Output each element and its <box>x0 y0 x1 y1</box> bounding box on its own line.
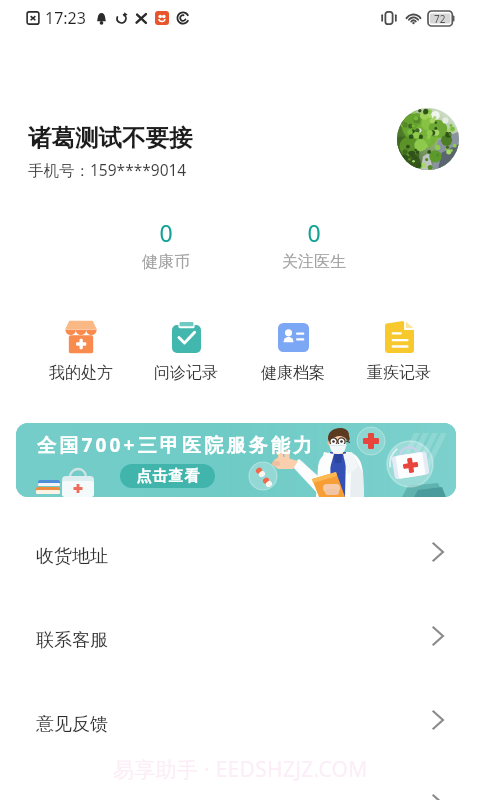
button[interactable]: 健康档案 <box>240 315 346 391</box>
staticText: 健康档案 <box>261 363 325 383</box>
staticText: 全国700+三甲医院服务能力 <box>37 432 316 458</box>
staticText: 72 <box>434 12 446 26</box>
staticText: 意见反馈 <box>36 713 108 736</box>
staticText: 我的处方 <box>49 363 113 383</box>
staticText: 健康币 <box>142 252 190 272</box>
staticText: 诸葛测试不要接 <box>28 123 193 153</box>
button[interactable]: 重疾记录 <box>346 315 452 391</box>
staticText: 收货地址 <box>36 545 108 568</box>
staticText: 关注医生 <box>282 252 346 272</box>
button[interactable]: 收货地址 <box>0 513 480 597</box>
button[interactable]: 全国700+三甲医院服务能力 点击查看 <box>16 423 456 497</box>
staticText: 问诊记录 <box>154 363 218 383</box>
staticText: 0 <box>307 217 321 248</box>
button[interactable]: 意见反馈 <box>0 681 480 765</box>
staticText: 手机号：159****9014 <box>28 159 187 180</box>
staticText: 0 <box>159 217 173 248</box>
button[interactable]: 问诊记录 <box>133 315 239 391</box>
button[interactable] <box>0 765 480 800</box>
button[interactable]: 0 <box>121 217 211 273</box>
staticText: 联系客服 <box>36 629 108 652</box>
button[interactable]: 0 <box>269 217 359 273</box>
staticText: 重疾记录 <box>367 363 431 383</box>
button[interactable]: 我的处方 <box>28 315 134 391</box>
button[interactable]: 联系客服 <box>0 597 480 681</box>
button[interactable]: Profile photo <box>397 108 459 170</box>
staticText: 17:23 <box>45 7 86 29</box>
button[interactable]: 点击查看 <box>120 464 215 488</box>
staticText: 易享助手 · EEDSHZJZ.COM <box>113 755 368 784</box>
staticText: 点击查看 <box>136 467 200 486</box>
